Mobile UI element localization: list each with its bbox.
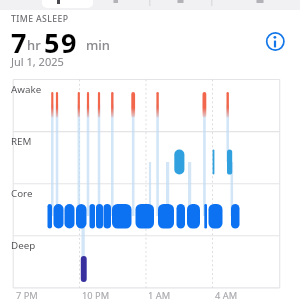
staticText: 59: [44, 24, 79, 61]
staticText: 7 PM: [16, 289, 38, 300]
staticText: Jul 1, 2025: [11, 54, 64, 69]
staticText: hr: [27, 36, 41, 54]
staticText: 7: [11, 24, 27, 61]
staticText: 10 PM: [82, 289, 110, 300]
button[interactable]: [263, 29, 288, 54]
staticText: Awake: [11, 83, 42, 96]
button[interactable]: [42, 0, 93, 8]
staticText: REM: [11, 135, 32, 148]
staticText: min: [86, 36, 110, 54]
staticText: 1 AM: [148, 289, 171, 300]
staticText: Deep: [11, 239, 36, 252]
staticText: TIME ASLEEP: [11, 13, 69, 25]
staticText: 4 AM: [215, 289, 238, 300]
staticText: Core: [11, 187, 33, 200]
